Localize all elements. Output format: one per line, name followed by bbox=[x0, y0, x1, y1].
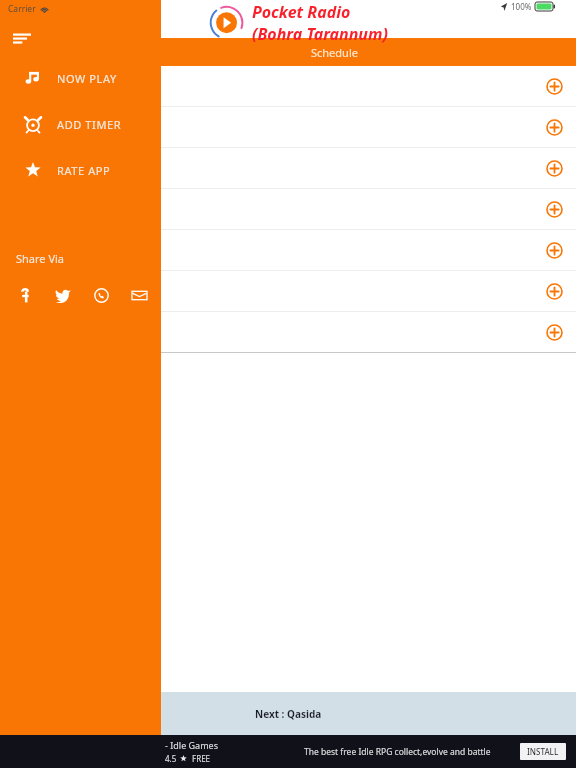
button[interactable]: Share via Email bbox=[128, 284, 150, 306]
staticText: The best free Idle RPG collect,evolve an… bbox=[304, 746, 491, 758]
staticText: - Idle Games bbox=[165, 739, 218, 751]
button[interactable]: Add reminder bbox=[0, 148, 576, 188]
staticText: Share Via bbox=[16, 251, 65, 266]
button[interactable]: Add reminder bbox=[0, 66, 576, 106]
button[interactable]: Add reminder bbox=[539, 112, 569, 142]
button[interactable]: Add reminder bbox=[539, 317, 569, 347]
button[interactable]: INSTALL bbox=[520, 743, 566, 760]
button[interactable]: Add reminder bbox=[539, 194, 569, 224]
button[interactable]: Share on Facebook bbox=[14, 284, 36, 306]
button[interactable] bbox=[0, 38, 92, 66]
staticText: Pocket Radio bbox=[252, 1, 351, 23]
button[interactable]: Menu bbox=[6, 22, 38, 54]
staticText: Carrier bbox=[8, 3, 36, 15]
staticText: 100% bbox=[511, 1, 532, 12]
button[interactable]: Add reminder bbox=[0, 107, 576, 147]
button[interactable]: Add reminder bbox=[539, 153, 569, 183]
staticText: FREE bbox=[192, 753, 211, 764]
staticText: (Bohra Tarannum) bbox=[252, 23, 388, 45]
button[interactable]: RATE APP bbox=[0, 157, 161, 183]
button[interactable]: ADD TIMER bbox=[0, 111, 161, 137]
staticText: Schedule bbox=[311, 45, 358, 60]
button[interactable]: Share on WhatsApp bbox=[90, 284, 112, 306]
staticText: RATE APP bbox=[57, 163, 111, 178]
staticText: Next : Qasida bbox=[255, 707, 322, 721]
button[interactable]: Add reminder bbox=[0, 312, 576, 352]
button[interactable]: Add reminder bbox=[0, 271, 576, 311]
button[interactable]: Add reminder bbox=[0, 189, 576, 229]
button[interactable]: Add reminder bbox=[539, 276, 569, 306]
button[interactable]: Add reminder bbox=[539, 71, 569, 101]
button[interactable]: Share on Twitter bbox=[52, 284, 74, 306]
button[interactable]: Add reminder bbox=[0, 230, 576, 270]
button[interactable]: Schedule bbox=[92, 38, 576, 66]
staticText: ADD TIMER bbox=[57, 117, 122, 132]
button[interactable]: Add reminder bbox=[539, 235, 569, 265]
staticText: 4.5 bbox=[165, 753, 177, 764]
staticText: NOW PLAY bbox=[57, 71, 117, 86]
button[interactable]: NOW PLAY bbox=[0, 65, 161, 91]
staticText: INSTALL bbox=[527, 746, 559, 757]
